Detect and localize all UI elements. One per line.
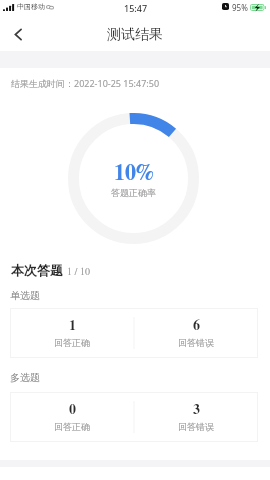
staticText: 回答正确 — [54, 337, 90, 348]
button[interactable]: 1 — [10, 308, 134, 358]
button[interactable]: 6 — [134, 308, 258, 358]
staticText: 答题正确率 — [111, 187, 156, 198]
staticText: 多选题 — [10, 371, 40, 384]
staticText: 测试结果 — [107, 26, 163, 44]
staticText: 15:47 — [124, 2, 148, 14]
staticText: 10% — [114, 162, 154, 184]
staticText: 3 — [193, 403, 200, 417]
staticText: 单选题 — [10, 289, 40, 302]
staticText: 回答正确 — [54, 421, 90, 432]
staticText: 1 — [69, 319, 76, 333]
staticText: 95% — [232, 2, 248, 13]
staticText: 6 — [193, 319, 200, 333]
staticText: 回答错误 — [178, 337, 214, 348]
staticText: 1 / 10 — [67, 267, 90, 277]
button[interactable]: Back — [4, 21, 32, 49]
staticText: 本次答题 — [11, 262, 63, 278]
staticText: 2022-10-25 15:47:50 — [74, 77, 160, 89]
button[interactable]: 3 — [134, 392, 258, 442]
staticText: 结果生成时间： — [11, 78, 74, 89]
staticText: 中国移动 — [17, 2, 45, 11]
staticText: 回答错误 — [178, 421, 214, 432]
staticText: 0 — [69, 403, 76, 417]
button[interactable]: 0 — [10, 392, 134, 442]
